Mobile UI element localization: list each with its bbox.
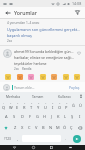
staticText: 2 xyxy=(10,102,12,105)
staticText: H xyxy=(43,114,46,119)
staticText: D xyxy=(21,114,24,119)
staticText: Yorum ekle… xyxy=(14,85,35,90)
staticText: I xyxy=(52,105,54,110)
staticText: 9 xyxy=(59,102,61,105)
button[interactable]: V xyxy=(34,123,39,132)
button[interactable]: heart xyxy=(27,73,35,81)
staticText: 14:08 xyxy=(72,1,82,6)
staticText: Merhaba xyxy=(6,94,20,98)
button[interactable]: ?123 xyxy=(2,134,13,143)
button[interactable]: A xyxy=(3,112,9,121)
button[interactable]: M xyxy=(55,123,60,132)
button[interactable]: Tamam xyxy=(25,92,51,100)
button[interactable]: Comma xyxy=(15,134,20,143)
button[interactable]: Send xyxy=(73,135,81,143)
button[interactable]: smile xyxy=(39,73,47,81)
button[interactable]: Ş xyxy=(70,112,75,121)
staticText: N xyxy=(49,125,53,130)
button[interactable]: H xyxy=(42,112,47,121)
button[interactable]: Like xyxy=(75,49,82,56)
staticText: başarılı olmuş xyxy=(7,33,32,38)
button[interactable]: ahmet99 Sonunda beklediğim güncelleme ge… xyxy=(0,48,85,72)
button[interactable]: 7 xyxy=(43,101,48,110)
staticText: Z xyxy=(14,125,17,130)
button[interactable]: S xyxy=(11,112,17,121)
button[interactable]: B xyxy=(41,123,46,132)
button[interactable]: 1 xyxy=(2,101,6,110)
staticText: I xyxy=(79,114,81,119)
button[interactable]: K xyxy=(56,112,61,121)
button[interactable]: F xyxy=(27,112,33,121)
staticText: W xyxy=(9,105,13,110)
staticText: Yanıtla xyxy=(22,67,32,71)
button[interactable]: Home xyxy=(29,145,38,150)
staticText: F xyxy=(29,114,32,119)
button[interactable]: 9 xyxy=(57,101,62,110)
button[interactable]: Shift xyxy=(2,123,10,132)
staticText: 8 xyxy=(52,102,54,105)
staticText: Paylaş xyxy=(69,85,80,90)
staticText: U xyxy=(44,105,47,110)
staticText: X xyxy=(21,125,24,130)
button[interactable]: 8 xyxy=(50,101,55,110)
button[interactable]: wow xyxy=(50,73,58,81)
button[interactable]: J xyxy=(49,112,54,121)
staticText: 0 xyxy=(66,102,68,105)
button[interactable]: Ğ xyxy=(71,101,76,110)
button[interactable]: Period xyxy=(63,134,68,143)
button[interactable]: Kullanıcı xyxy=(51,92,77,100)
staticText: teşekkürler herkese xyxy=(14,61,47,66)
button[interactable]: Paylaş xyxy=(67,84,82,91)
button[interactable]: L xyxy=(63,112,68,121)
button[interactable]: N xyxy=(48,123,53,132)
staticText: ?123 xyxy=(4,137,11,141)
button[interactable]: 6 xyxy=(36,101,41,110)
staticText: R xyxy=(23,105,26,110)
button[interactable]: 2 xyxy=(8,101,13,110)
button[interactable]: 0 xyxy=(64,101,69,110)
button[interactable]: grin xyxy=(4,73,12,81)
staticText: P xyxy=(65,105,68,110)
button[interactable]: Ü xyxy=(78,101,83,110)
button[interactable]: 5 xyxy=(29,101,34,110)
button[interactable]: Recents xyxy=(47,145,56,150)
button[interactable]: cool xyxy=(73,73,81,81)
staticText: Q xyxy=(2,105,6,110)
staticText: Tamam xyxy=(32,94,44,98)
button[interactable]: Z xyxy=(12,123,18,132)
staticText: ahmet99 Sonunda beklediğim güncelleme ge… xyxy=(14,49,75,54)
button[interactable]: Filter xyxy=(73,8,82,17)
staticText: 3 xyxy=(17,102,19,105)
staticText: 2sa xyxy=(7,39,12,43)
staticText: Ü xyxy=(79,103,82,108)
button[interactable]: Back xyxy=(3,8,12,17)
button[interactable]: X xyxy=(20,123,25,132)
button[interactable]: I xyxy=(77,112,82,121)
button[interactable]: 4 xyxy=(22,101,27,110)
button[interactable]: Ç xyxy=(69,123,74,132)
staticText: Yorumlar xyxy=(14,9,37,16)
staticText: Uygulamanın son güncellemesi gerçekten ç… xyxy=(7,27,81,32)
staticText: 4 yorumdan 1–4 arası xyxy=(7,21,40,25)
button[interactable]: Backspace xyxy=(76,123,83,132)
button[interactable]: D xyxy=(19,112,25,121)
staticText: 2sa xyxy=(14,67,19,71)
button[interactable]: Yorum ekle… xyxy=(12,85,67,90)
button[interactable]: G xyxy=(35,112,40,121)
button[interactable]: fire xyxy=(16,73,24,81)
button[interactable]: Ö xyxy=(62,123,67,132)
button[interactable]: 3 xyxy=(15,101,20,110)
button[interactable]: Back xyxy=(10,145,19,150)
staticText: Ö xyxy=(63,125,67,130)
staticText: . xyxy=(65,136,66,141)
button[interactable]: Voice input xyxy=(77,92,85,100)
staticText: M xyxy=(56,125,60,130)
staticText: 7 xyxy=(45,102,47,105)
staticText: 4 xyxy=(24,102,26,105)
button[interactable]: C xyxy=(27,123,32,132)
button[interactable]: Merhaba xyxy=(0,92,25,100)
staticText: Y xyxy=(37,105,40,110)
button[interactable]: sad xyxy=(62,73,70,81)
button[interactable]: Keyboard xyxy=(66,145,75,150)
